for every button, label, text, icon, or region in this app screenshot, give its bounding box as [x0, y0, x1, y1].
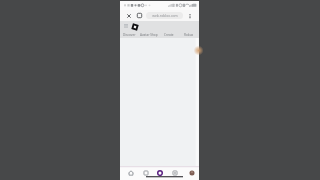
staticText: Discover	[123, 33, 136, 37]
staticText: Avatar Shop	[140, 33, 158, 37]
button[interactable]: web.roblox.com	[146, 12, 183, 19]
button[interactable]: Robux	[179, 31, 199, 38]
staticText: web.roblox.com	[152, 13, 178, 18]
button[interactable]: Current tab	[155, 168, 165, 178]
button[interactable]: Home	[126, 168, 136, 178]
button[interactable]: Screenshot	[170, 168, 180, 178]
button[interactable]: Tabs	[141, 168, 151, 178]
button[interactable]: Profile	[187, 168, 197, 178]
staticText: Robux	[184, 33, 194, 37]
staticText: Create	[164, 33, 174, 37]
button[interactable]: Site information	[135, 11, 144, 20]
button[interactable]: Close	[124, 11, 133, 20]
button[interactable]: Menu	[122, 22, 130, 30]
button[interactable]: Avatar Shop	[139, 31, 159, 38]
button[interactable]: Notification	[193, 46, 202, 55]
button[interactable]: More options	[185, 11, 194, 20]
button[interactable]: Create	[159, 31, 179, 38]
button[interactable]: Discover	[120, 31, 139, 38]
